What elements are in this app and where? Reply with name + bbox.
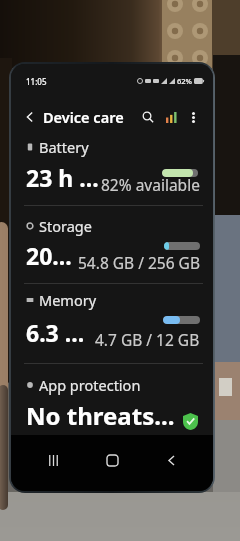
button[interactable]: [11, 209, 213, 281]
staticText: 6.3 ...: [26, 317, 85, 348]
staticText: 54.8 GB / 256 GB: [78, 252, 200, 273]
button[interactable]: Back: [20, 107, 40, 127]
staticText: Battery: [39, 137, 89, 157]
staticText: 11:05: [26, 76, 47, 87]
staticText: 82% available: [101, 174, 200, 195]
staticText: App protection: [39, 375, 141, 395]
staticText: Memory: [39, 290, 97, 310]
staticText: 20...: [26, 240, 72, 271]
button[interactable]: Recents: [36, 443, 70, 477]
staticText: 23 h ...: [26, 162, 99, 193]
button[interactable]: Usage statistics: [161, 107, 181, 127]
staticText: No threats...: [26, 399, 175, 432]
staticText: 4.7 GB / 12 GB: [95, 329, 200, 350]
button[interactable]: Search: [138, 107, 158, 127]
button[interactable]: [11, 368, 213, 428]
staticText: 62%: [177, 76, 192, 86]
button[interactable]: Back: [154, 443, 188, 477]
button[interactable]: More options: [184, 108, 202, 126]
button[interactable]: [11, 283, 213, 355]
staticText: Storage: [39, 216, 92, 236]
staticText: Device care: [43, 107, 124, 127]
button[interactable]: Home: [95, 443, 129, 477]
button[interactable]: [11, 130, 213, 202]
